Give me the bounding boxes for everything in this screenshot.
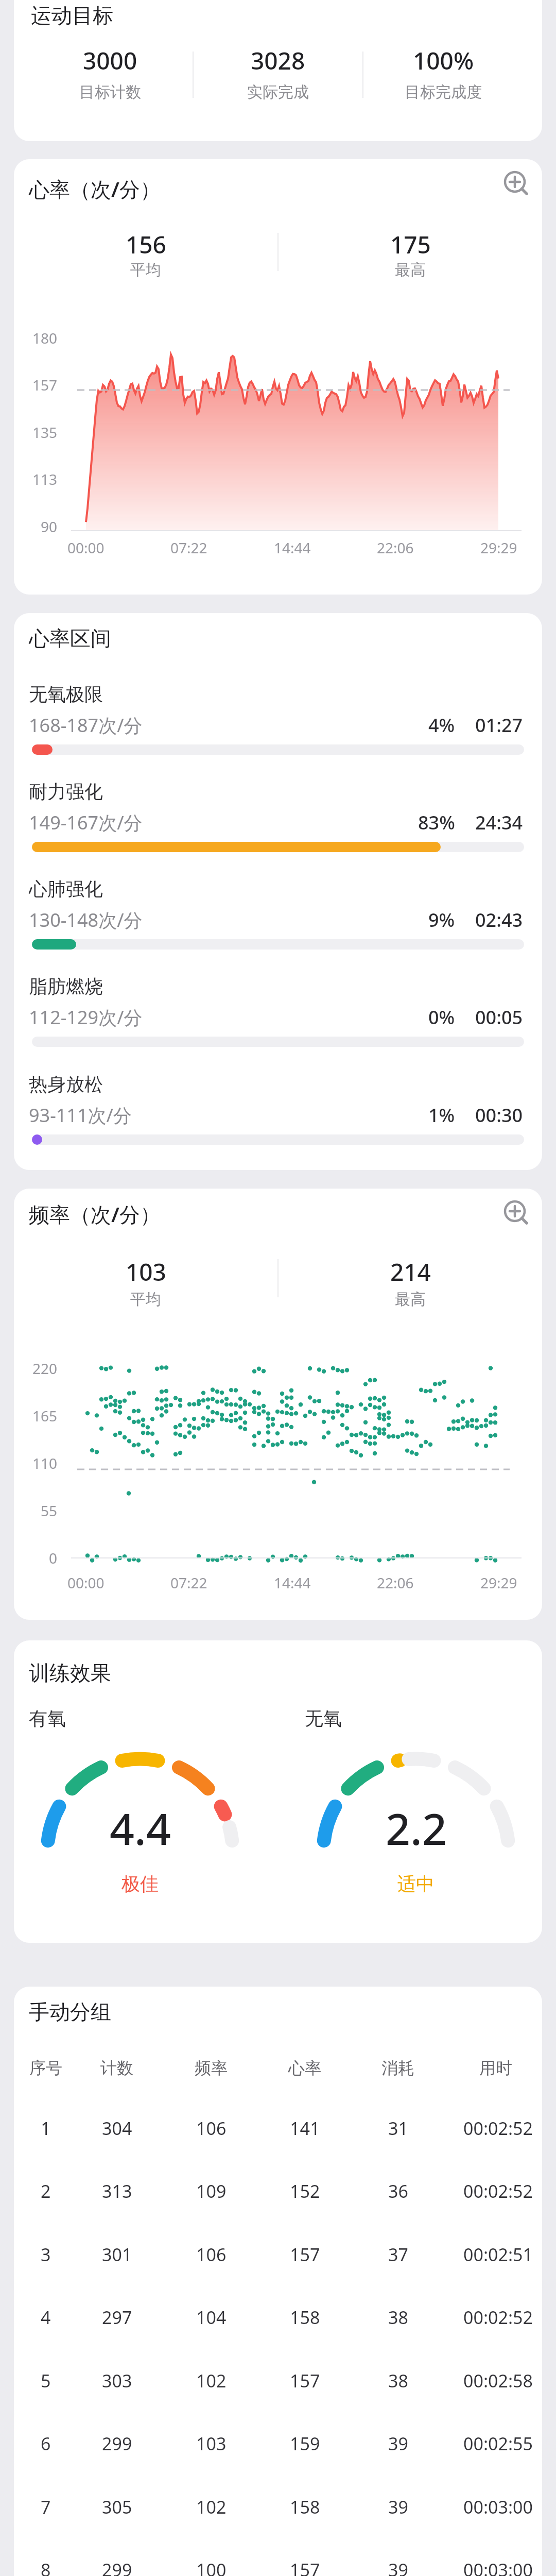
staticText: 手动分组: [29, 1999, 111, 2025]
staticText: 39: [388, 2495, 408, 2519]
staticText: 计数: [100, 2058, 133, 2078]
staticText: 01:27: [475, 713, 523, 738]
staticText: 38: [388, 2306, 408, 2329]
staticText: 14:44: [274, 538, 311, 557]
staticText: 38: [388, 2369, 408, 2393]
staticText: 37: [388, 2243, 408, 2266]
staticText: 心率区间: [29, 625, 111, 651]
staticText: 热身放松: [29, 1073, 103, 1096]
staticText: 3: [41, 2243, 51, 2266]
staticText: 消耗: [381, 2058, 414, 2078]
staticText: 304: [102, 2116, 132, 2140]
staticText: 157: [290, 2369, 320, 2393]
staticText: 6: [41, 2432, 51, 2455]
staticText: 102: [196, 2369, 227, 2393]
staticText: 无氧极限: [29, 683, 103, 706]
staticText: 100: [196, 2558, 227, 2576]
staticText: 14:44: [274, 1573, 311, 1592]
staticText: 149-167次/分: [29, 810, 143, 835]
staticText: 135: [32, 422, 58, 442]
staticText: 00:03:00: [463, 2495, 533, 2519]
staticText: 训练效果: [29, 1660, 111, 1686]
staticText: 最高: [395, 1290, 426, 1309]
staticText: 极佳: [121, 1872, 159, 1895]
staticText: 158: [290, 2306, 320, 2329]
staticText: 心率: [288, 2058, 321, 2078]
staticText: 2.2: [386, 1799, 447, 1857]
staticText: 00:02:58: [463, 2369, 533, 2393]
staticText: 00:00: [67, 538, 105, 557]
staticText: 29:29: [480, 538, 517, 557]
staticText: 313: [102, 2179, 132, 2203]
staticText: 106: [196, 2243, 227, 2266]
staticText: 目标完成度: [405, 82, 482, 102]
staticText: 22:06: [377, 1573, 414, 1592]
staticText: 运动目标: [31, 3, 113, 28]
staticText: 平均: [130, 260, 161, 280]
staticText: 110: [32, 1453, 58, 1473]
staticText: 297: [102, 2306, 132, 2329]
staticText: 00:00: [67, 1573, 105, 1592]
staticText: 29:29: [480, 1573, 517, 1592]
staticText: 100%: [413, 44, 474, 77]
staticText: 130-148次/分: [29, 907, 143, 933]
staticText: 39: [388, 2558, 408, 2576]
staticText: 158: [290, 2495, 320, 2519]
staticText: 目标计数: [79, 82, 141, 102]
staticText: 113: [32, 469, 58, 489]
staticText: 220: [32, 1359, 58, 1378]
staticText: 159: [290, 2432, 320, 2455]
staticText: 112-129次/分: [29, 1005, 143, 1030]
staticText: 305: [102, 2495, 132, 2519]
staticText: 22:06: [377, 538, 414, 557]
staticText: 00:02:52: [463, 2179, 533, 2203]
staticText: 9%: [428, 907, 455, 933]
staticText: 0%: [428, 1005, 455, 1030]
staticText: 无氧: [305, 1707, 342, 1730]
staticText: 1: [41, 2116, 51, 2140]
staticText: 152: [290, 2179, 320, 2203]
staticText: 93-111次/分: [29, 1103, 132, 1128]
staticText: 55: [41, 1501, 58, 1520]
staticText: 2: [41, 2179, 51, 2203]
staticText: 31: [388, 2116, 408, 2140]
staticText: 频率（次/分）: [29, 1200, 161, 1228]
staticText: 103: [196, 2432, 227, 2455]
staticText: 165: [32, 1406, 58, 1426]
staticText: 180: [32, 328, 58, 348]
staticText: 8: [41, 2558, 51, 2576]
staticText: 脂肪燃烧: [29, 975, 103, 998]
staticText: 3000: [83, 44, 137, 77]
staticText: 07:22: [170, 1573, 207, 1592]
staticText: 平均: [130, 1290, 161, 1309]
staticText: 299: [102, 2558, 132, 2576]
staticText: 141: [290, 2116, 320, 2140]
staticText: 有氧: [29, 1707, 66, 1730]
staticText: 103: [126, 1256, 166, 1288]
staticText: 00:02:55: [463, 2432, 533, 2455]
staticText: 3028: [251, 44, 305, 77]
staticText: 90: [41, 517, 58, 536]
staticText: 序号: [29, 2058, 62, 2078]
staticText: 4.4: [110, 1799, 171, 1857]
staticText: 214: [390, 1256, 431, 1288]
staticText: 07:22: [170, 538, 207, 557]
staticText: 02:43: [475, 907, 523, 933]
staticText: 00:02:51: [463, 2243, 533, 2266]
button[interactable]: [502, 1198, 528, 1224]
staticText: 303: [102, 2369, 132, 2393]
staticText: 301: [102, 2243, 132, 2266]
staticText: 175: [390, 228, 431, 261]
staticText: 39: [388, 2432, 408, 2455]
staticText: 心肺强化: [29, 877, 103, 901]
staticText: 00:30: [475, 1103, 523, 1128]
staticText: 00:02:52: [463, 2116, 533, 2140]
staticText: 106: [196, 2116, 227, 2140]
staticText: 最高: [395, 260, 426, 280]
button[interactable]: [502, 169, 528, 195]
staticText: 用时: [479, 2058, 512, 2078]
staticText: 心率（次/分）: [29, 175, 161, 203]
staticText: 109: [196, 2179, 227, 2203]
staticText: 24:34: [475, 810, 523, 835]
staticText: 耐力强化: [29, 780, 103, 803]
